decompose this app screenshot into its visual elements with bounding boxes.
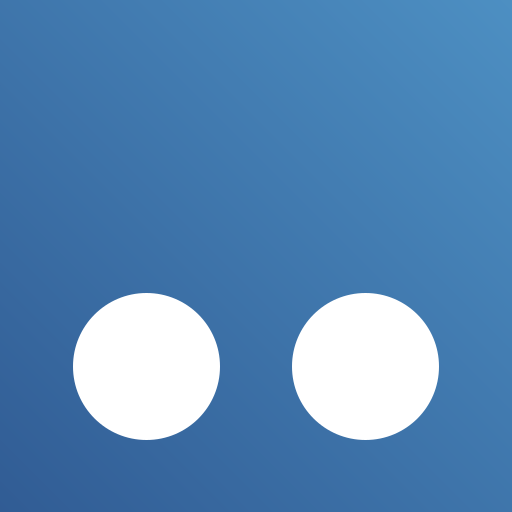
button[interactable]: First option [73, 293, 220, 440]
button[interactable]: Second option [292, 293, 439, 440]
